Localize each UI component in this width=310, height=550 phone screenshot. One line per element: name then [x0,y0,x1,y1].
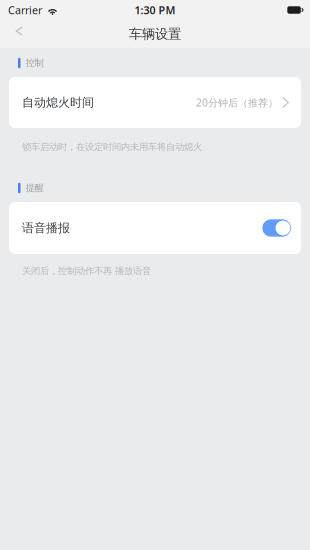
staticText: 锁车启动时，在设定时间内未用车将自动熄火 [22,141,202,153]
staticText: 语音播报 [22,220,70,235]
button[interactable]: 返回 [0,20,35,42]
staticText: 车辆设置 [129,26,181,42]
staticText: 20分钟后（推荐） [196,96,278,109]
button[interactable]: 自动熄火时间 [9,77,301,128]
staticText: 控制 [25,57,43,69]
staticText: 提醒 [25,182,43,194]
staticText: Carrier [8,3,42,17]
staticText: 1:30 PM [134,3,175,17]
staticText: 自动熄火时间 [22,95,94,110]
staticText: 关闭后，控制动作不再 播放语音 [22,265,151,277]
button[interactable]: 语音播报 [262,219,291,237]
